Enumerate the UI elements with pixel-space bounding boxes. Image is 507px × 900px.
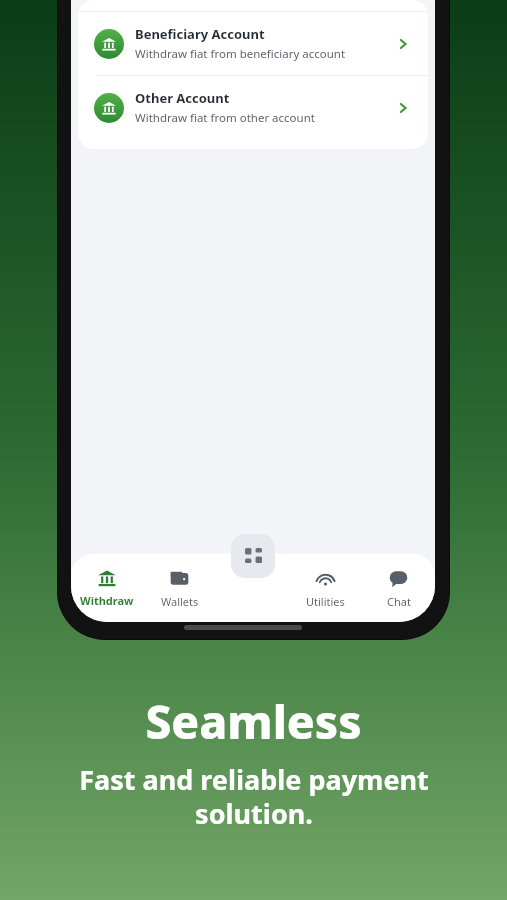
button[interactable]: More apps: [231, 534, 275, 578]
staticText: Other Account: [135, 89, 230, 107]
button[interactable]: Other Account: [78, 76, 428, 139]
staticText: Withdraw fiat from other account: [135, 110, 315, 126]
staticText: Fast and reliable payment solution.: [79, 761, 429, 832]
staticText: Withdraw: [80, 593, 134, 608]
button[interactable]: Wallets: [143, 554, 216, 622]
button[interactable]: Chat: [362, 554, 435, 622]
button[interactable]: Utilities: [289, 554, 362, 622]
staticText: Wallets: [161, 594, 199, 609]
staticText: Beneficiary Account: [135, 25, 265, 43]
button[interactable]: Beneficiary Account: [78, 12, 428, 75]
staticText: Utilities: [306, 594, 345, 609]
staticText: Chat: [387, 594, 411, 609]
staticText: Withdraw fiat from beneficiary account: [135, 46, 346, 62]
button[interactable]: Withdraw: [71, 554, 143, 622]
staticText: Seamless: [145, 690, 362, 753]
